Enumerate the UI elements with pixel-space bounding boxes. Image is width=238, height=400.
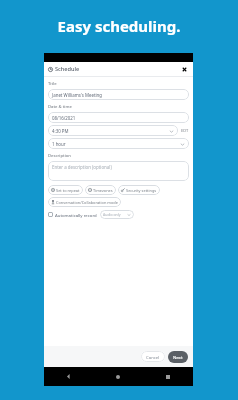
staticText: Title bbox=[48, 81, 57, 87]
button[interactable]: Security settings bbox=[118, 185, 160, 195]
button[interactable]: Cancel bbox=[141, 351, 165, 362]
staticText: Set to repeat bbox=[56, 188, 80, 193]
button[interactable]: Recent apps bbox=[143, 367, 193, 386]
button[interactable]: 4:30 PM bbox=[48, 125, 178, 136]
staticText: 1 hour bbox=[52, 141, 66, 147]
button[interactable]: Home bbox=[93, 367, 143, 386]
button[interactable]: Conversation/Collaboration mode bbox=[48, 197, 121, 207]
staticText: Janet Williams's Meeting bbox=[52, 92, 103, 98]
staticText: Automatically record bbox=[55, 212, 97, 218]
button[interactable]: Set to repeat bbox=[48, 185, 83, 195]
staticText: 4:30 PM bbox=[52, 128, 69, 134]
button[interactable]: Next bbox=[168, 351, 188, 363]
staticText: Audio only bbox=[103, 212, 121, 217]
button[interactable]: 08/16/2021 bbox=[48, 112, 189, 123]
button[interactable]: Janet Williams's Meeting bbox=[48, 89, 189, 100]
staticText: 08/16/2021 bbox=[52, 115, 76, 121]
staticText: Timezones bbox=[93, 188, 113, 193]
staticText: Next bbox=[173, 354, 183, 360]
staticText: Description bbox=[48, 153, 71, 159]
button[interactable]: 1 hour bbox=[48, 138, 189, 149]
staticText: Easy scheduling. bbox=[0, 16, 238, 36]
button[interactable]: Back bbox=[44, 367, 93, 386]
button[interactable]: Enter a description (optional) bbox=[48, 161, 189, 181]
staticText: EDT bbox=[181, 128, 189, 133]
staticText: Cancel bbox=[146, 354, 160, 360]
button[interactable]: Audio only bbox=[100, 210, 134, 219]
staticText: Conversation/Collaboration mode bbox=[56, 200, 118, 205]
button[interactable]: Automatically record bbox=[48, 210, 134, 219]
staticText: Enter a description (optional) bbox=[52, 164, 112, 170]
button[interactable]: Timezones bbox=[85, 185, 116, 195]
staticText: Security settings bbox=[126, 188, 157, 193]
staticText: Schedule bbox=[55, 65, 80, 73]
staticText: Date & time bbox=[48, 104, 72, 110]
button[interactable]: Close bbox=[180, 65, 189, 74]
